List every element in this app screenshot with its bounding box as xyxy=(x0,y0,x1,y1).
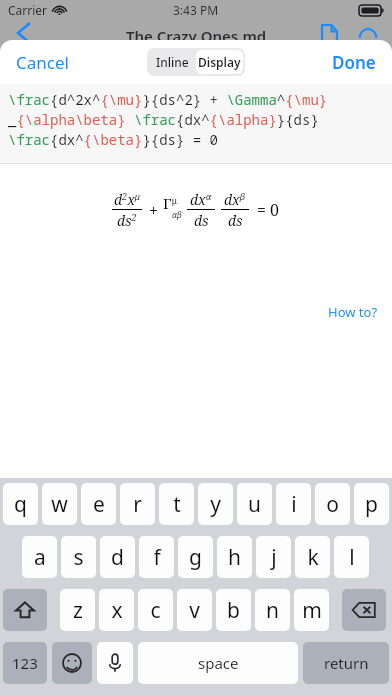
button[interactable]: k xyxy=(295,536,330,578)
button[interactable]: r xyxy=(120,483,155,525)
button[interactable]: Dictation xyxy=(97,642,133,684)
button[interactable]: i xyxy=(276,483,311,525)
button[interactable]: g xyxy=(178,536,213,578)
staticText: u xyxy=(248,490,261,519)
staticText: Inline xyxy=(156,54,189,70)
button[interactable]: b xyxy=(216,589,251,631)
button[interactable]: x xyxy=(99,589,134,631)
staticText: The Crazy Ones.md xyxy=(126,26,267,46)
button[interactable]: Shift xyxy=(3,589,47,631)
button[interactable]: How to? xyxy=(314,299,392,325)
staticText: ds xyxy=(194,211,209,230)
staticText: 123 xyxy=(12,653,38,673)
staticText: e xyxy=(93,490,105,519)
staticText: n xyxy=(266,596,279,625)
staticText: h xyxy=(228,543,241,572)
staticText: return xyxy=(324,653,369,673)
button[interactable]: d xyxy=(100,536,135,578)
staticText: z xyxy=(73,596,83,625)
staticText: dxβ xyxy=(224,190,246,209)
button[interactable]: z xyxy=(60,589,95,631)
staticText: b xyxy=(227,596,240,625)
staticText: 3:43 PM xyxy=(173,2,219,18)
button[interactable]: j xyxy=(256,536,291,578)
button[interactable]: p xyxy=(354,483,389,525)
button[interactable]: e xyxy=(81,483,116,525)
button[interactable]: \frac{d^2x^{\mu}}{ds^2} + \Gamma^{\mu} _… xyxy=(8,90,386,163)
button[interactable]: y xyxy=(198,483,233,525)
button[interactable]: m xyxy=(294,589,329,631)
staticText: + xyxy=(149,199,158,221)
staticText: \frac{d^2x^{\mu}}{ds^2} + \Gamma^{\mu} _… xyxy=(8,90,328,149)
staticText: y xyxy=(210,490,221,519)
button[interactable]: v xyxy=(177,589,212,631)
button[interactable]: s xyxy=(61,536,96,578)
button[interactable]: u xyxy=(237,483,272,525)
staticText: f xyxy=(153,543,161,572)
button[interactable]: Cancel xyxy=(0,45,85,80)
button[interactable]: Done xyxy=(316,45,392,80)
button[interactable]: n xyxy=(255,589,290,631)
button[interactable]: Inline xyxy=(149,50,196,74)
staticText: a xyxy=(34,543,46,572)
staticText: Display xyxy=(198,54,241,70)
staticText: d xyxy=(111,543,124,572)
staticText: q xyxy=(14,490,27,519)
staticText: ds xyxy=(228,211,243,230)
staticText: x xyxy=(111,596,123,625)
staticText: dxα xyxy=(190,190,212,209)
button[interactable]: l xyxy=(334,536,369,578)
staticText: How to? xyxy=(328,303,378,321)
staticText: l xyxy=(349,543,355,572)
button[interactable]: Backspace xyxy=(342,589,386,631)
staticText: Γμ xyxy=(163,193,177,213)
button[interactable]: q xyxy=(3,483,38,525)
staticText: j xyxy=(271,543,277,572)
staticText: s xyxy=(73,543,84,572)
staticText: p xyxy=(365,490,378,519)
button[interactable]: f xyxy=(139,536,174,578)
staticText: Cancel xyxy=(16,51,69,74)
button[interactable]: 123 xyxy=(3,642,47,684)
button[interactable]: o xyxy=(315,483,350,525)
button[interactable]: a xyxy=(22,536,57,578)
staticText: αβ xyxy=(172,209,182,220)
staticText: v xyxy=(189,596,200,625)
staticText: space xyxy=(198,653,239,673)
staticText: r xyxy=(133,490,142,519)
staticText: Done xyxy=(332,51,376,74)
button[interactable]: Display xyxy=(196,50,243,74)
staticText: c xyxy=(150,596,161,625)
staticText: d2xμ xyxy=(114,190,140,209)
button[interactable]: w xyxy=(42,483,77,525)
staticText: = 0 xyxy=(257,199,280,221)
staticText: t xyxy=(173,490,181,519)
staticText: k xyxy=(307,543,319,572)
button[interactable]: Emoji xyxy=(52,642,92,684)
staticText: Carrier xyxy=(8,2,48,18)
staticText: m xyxy=(302,596,322,625)
button[interactable]: c xyxy=(138,589,173,631)
button[interactable]: return xyxy=(303,642,389,684)
button[interactable]: space xyxy=(138,642,298,684)
button[interactable]: t xyxy=(159,483,194,525)
staticText: g xyxy=(189,543,202,572)
staticText: o xyxy=(326,490,339,519)
staticText: i xyxy=(291,490,297,519)
button[interactable]: h xyxy=(217,536,252,578)
staticText: ds2 xyxy=(117,211,137,230)
staticText: w xyxy=(51,490,68,519)
